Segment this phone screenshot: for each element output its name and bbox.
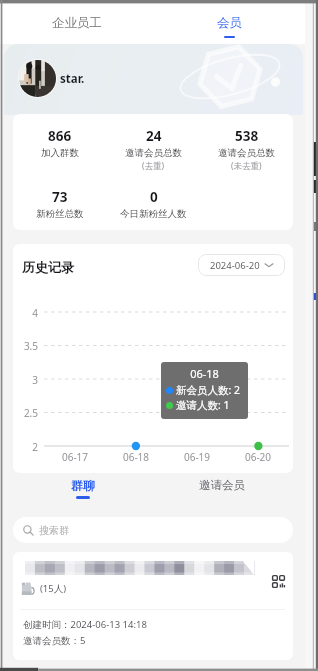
staticText: 538 <box>235 127 259 145</box>
staticText: 新会员人数: 2 <box>176 383 241 397</box>
staticText: 2024-06-20 <box>210 259 260 272</box>
staticText: 06-19 <box>177 450 217 464</box>
button[interactable]: 邀请会员 <box>196 478 248 492</box>
button[interactable]: 会员 <box>153 0 306 44</box>
staticText: 邀请会员数：5 <box>23 634 86 647</box>
staticText: 4 <box>13 306 38 320</box>
staticText: 历史记录 <box>22 259 74 275</box>
staticText: 24 <box>146 127 162 145</box>
button[interactable]: 866 <box>13 127 107 159</box>
staticText: 3 <box>13 373 38 387</box>
staticText: 搜索群 <box>39 524 69 537</box>
button[interactable]: 538 <box>200 127 293 172</box>
staticText: 06-20 <box>238 450 278 464</box>
button[interactable]: 73 <box>13 188 107 220</box>
button[interactable]: 0 <box>107 188 200 220</box>
staticText: 邀请会员总数 <box>125 147 182 159</box>
button[interactable]: 群聊 <box>66 478 100 499</box>
staticText: 2 <box>13 440 38 454</box>
staticText: 邀请人数: 1 <box>176 398 230 412</box>
staticText: 3.5 <box>13 339 38 353</box>
button[interactable]: 2024-06-20 <box>198 254 285 276</box>
staticText: 06-17 <box>55 450 95 464</box>
staticText: 企业员工 <box>52 15 102 31</box>
staticText: (15人) <box>40 582 67 595</box>
staticText: 今日新粉丝人数 <box>120 208 187 220</box>
staticText: 2.5 <box>13 406 38 420</box>
staticText: 加入群数 <box>41 147 79 159</box>
staticText: 创建时间：2024-06-13 14:18 <box>23 618 147 631</box>
button[interactable]: 搜索群 <box>13 517 293 543</box>
staticText: 会员 <box>217 15 242 31</box>
staticText: 邀请会员总数 <box>218 147 275 159</box>
button[interactable]: (15人) <box>13 552 293 660</box>
staticText: 群聊 <box>71 478 95 493</box>
staticText: (未去重) <box>231 160 262 172</box>
staticText: 新粉丝总数 <box>36 208 84 220</box>
staticText: 866 <box>48 127 72 145</box>
staticText: 06-18 <box>116 450 156 464</box>
staticText: (去重) <box>142 160 165 172</box>
staticText: 0 <box>150 188 158 206</box>
staticText: 73 <box>52 188 68 206</box>
staticText: 06-18 <box>166 366 243 381</box>
staticText: 邀请会员 <box>199 478 245 492</box>
button[interactable]: 群二维码 <box>272 575 285 588</box>
staticText: star. <box>60 71 85 87</box>
button[interactable]: 24 <box>107 127 200 172</box>
button[interactable]: 企业员工 <box>0 0 153 44</box>
